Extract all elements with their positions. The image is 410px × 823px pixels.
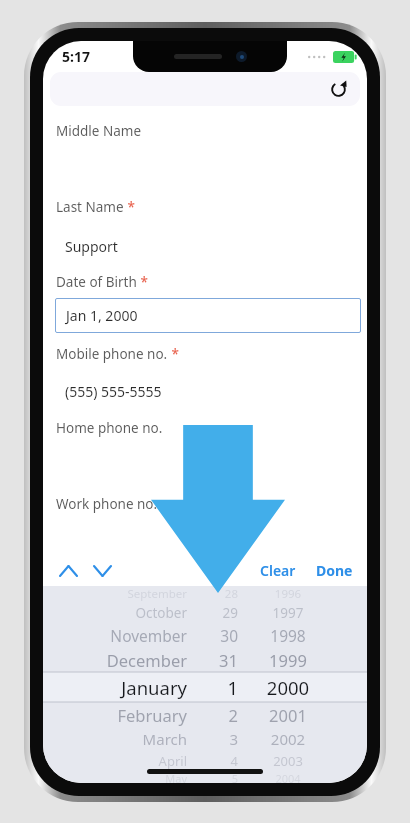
staticText: 2003 — [248, 752, 328, 770]
staticText: Home phone no. — [56, 419, 163, 437]
staticText: Jan 1, 2000 — [66, 306, 138, 325]
staticText: 1999 — [248, 649, 328, 671]
staticText: March — [47, 729, 187, 749]
staticText: 30 — [193, 625, 238, 646]
button[interactable]: March — [43, 727, 367, 751]
staticText: April — [47, 752, 187, 770]
staticText: Last Name — [56, 198, 124, 216]
staticText: Clear — [260, 561, 296, 580]
button[interactable]: May — [43, 771, 367, 783]
staticText: 1998 — [248, 625, 328, 646]
staticText: November — [47, 625, 187, 646]
button[interactable]: Jan 1, 2000 — [55, 298, 361, 333]
staticText: May — [47, 771, 187, 783]
button[interactable]: Previous field — [53, 557, 83, 585]
button[interactable]: January — [43, 672, 367, 702]
staticText: 5:17 — [62, 47, 90, 66]
staticText: 3 — [193, 729, 238, 749]
staticText: January — [47, 675, 187, 700]
staticText: (555) 555-5555 — [65, 382, 162, 401]
staticText: October — [47, 604, 187, 622]
staticText: 29 — [193, 604, 238, 622]
staticText: 1 — [193, 675, 238, 700]
staticText: 28 — [193, 586, 238, 602]
staticText: September — [47, 586, 187, 602]
staticText: * — [168, 345, 179, 363]
button[interactable]: Next field — [87, 557, 117, 585]
staticText: Work phone no. — [56, 495, 158, 513]
staticText: 5 — [193, 771, 238, 783]
button[interactable]: April — [43, 751, 367, 771]
staticText: Mobile phone no. — [56, 345, 168, 363]
staticText: 1996 — [248, 586, 328, 602]
button[interactable]: November — [43, 623, 367, 647]
staticText: 2004 — [248, 771, 328, 783]
staticText: 2 — [193, 704, 238, 726]
staticText: * — [137, 273, 148, 291]
staticText: 2000 — [248, 675, 328, 700]
staticText: Support — [65, 237, 118, 256]
button[interactable]: Reload page — [50, 72, 360, 106]
staticText: February — [47, 704, 187, 726]
button[interactable]: December — [43, 647, 367, 672]
staticText: Done — [316, 561, 353, 580]
button[interactable]: October — [43, 602, 367, 623]
button[interactable]: Clear — [254, 558, 302, 583]
staticText: 2001 — [248, 704, 328, 726]
staticText: * — [124, 198, 135, 216]
button[interactable]: Reload page — [324, 75, 352, 103]
button[interactable]: February — [43, 702, 367, 727]
staticText: Middle Name — [56, 122, 142, 140]
button[interactable]: Done — [312, 558, 357, 583]
staticText: 2002 — [248, 729, 328, 749]
staticText: 31 — [193, 649, 238, 671]
staticText: 4 — [193, 752, 238, 770]
button[interactable]: September — [43, 586, 367, 602]
staticText: 1997 — [248, 604, 328, 622]
staticText: Date of Birth — [56, 273, 137, 291]
staticText: December — [47, 649, 187, 671]
